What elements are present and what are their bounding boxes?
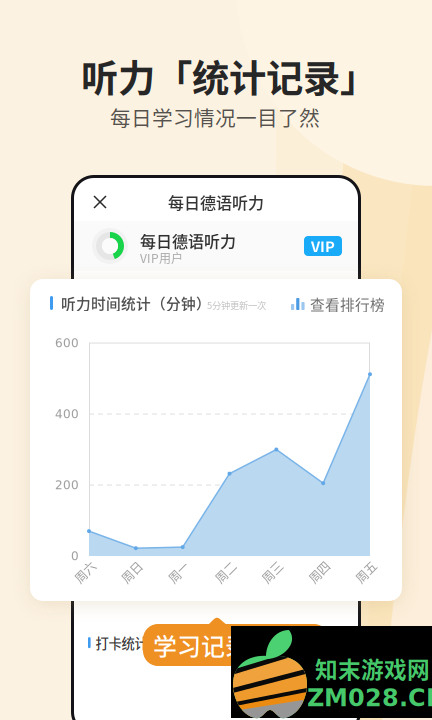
staticText: 400 bbox=[55, 407, 79, 421]
staticText: 600 bbox=[55, 336, 79, 350]
staticText: 周日 bbox=[120, 563, 144, 581]
staticText: 每日德语听力 bbox=[168, 190, 264, 214]
staticText: 周四 bbox=[307, 563, 331, 581]
staticText: 听力时间统计（分钟） bbox=[61, 292, 211, 314]
staticText: VIP用户 bbox=[140, 249, 183, 266]
staticText: 查看排行榜 bbox=[310, 293, 385, 315]
staticText: 知末游戏网 bbox=[315, 652, 430, 685]
staticText: 每日德语听力 bbox=[140, 229, 236, 252]
staticText: 每日学习情况一目了然 bbox=[110, 102, 320, 132]
staticText: 200 bbox=[55, 478, 79, 492]
staticText: 打卡统计 bbox=[96, 633, 148, 652]
staticText: 周五 bbox=[354, 563, 378, 581]
staticText: 听力「统计记录」 bbox=[81, 49, 377, 103]
button[interactable]: 查看排行榜 bbox=[291, 294, 391, 314]
staticText: 周一 bbox=[167, 563, 191, 581]
staticText: 周六 bbox=[73, 563, 97, 581]
staticText: 周三 bbox=[260, 563, 284, 581]
button[interactable]: VIP bbox=[304, 236, 342, 256]
button[interactable]: Close bbox=[84, 186, 116, 218]
staticText: 周二 bbox=[213, 563, 237, 581]
staticText: 学习记录尽 bbox=[153, 628, 273, 662]
staticText: VIP bbox=[311, 235, 335, 257]
staticText: 5分钟更新一次 bbox=[207, 298, 266, 312]
staticText: 0 bbox=[71, 549, 79, 563]
staticText: ZM028.CN bbox=[307, 684, 432, 712]
